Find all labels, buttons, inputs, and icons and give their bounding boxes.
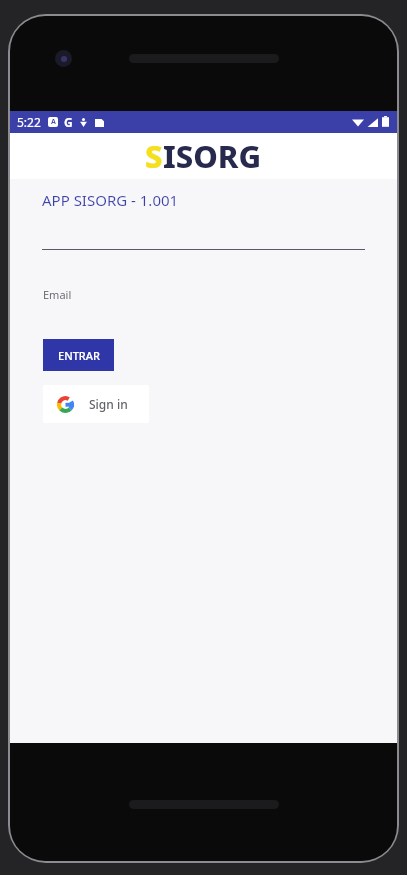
staticText: A [51, 117, 56, 127]
staticText: S [145, 135, 163, 177]
staticText: ISORG [163, 135, 262, 177]
staticText: Email [43, 287, 72, 302]
button[interactable]: ENTRAR [43, 339, 114, 371]
staticText: ENTRAR [58, 348, 100, 363]
button[interactable]: Sign in [43, 385, 149, 423]
staticText: APP SISORG - 1.001 [42, 190, 179, 210]
staticText: G [64, 114, 73, 130]
staticText: Sign in [89, 396, 128, 412]
staticText: 5:22 [17, 114, 41, 130]
